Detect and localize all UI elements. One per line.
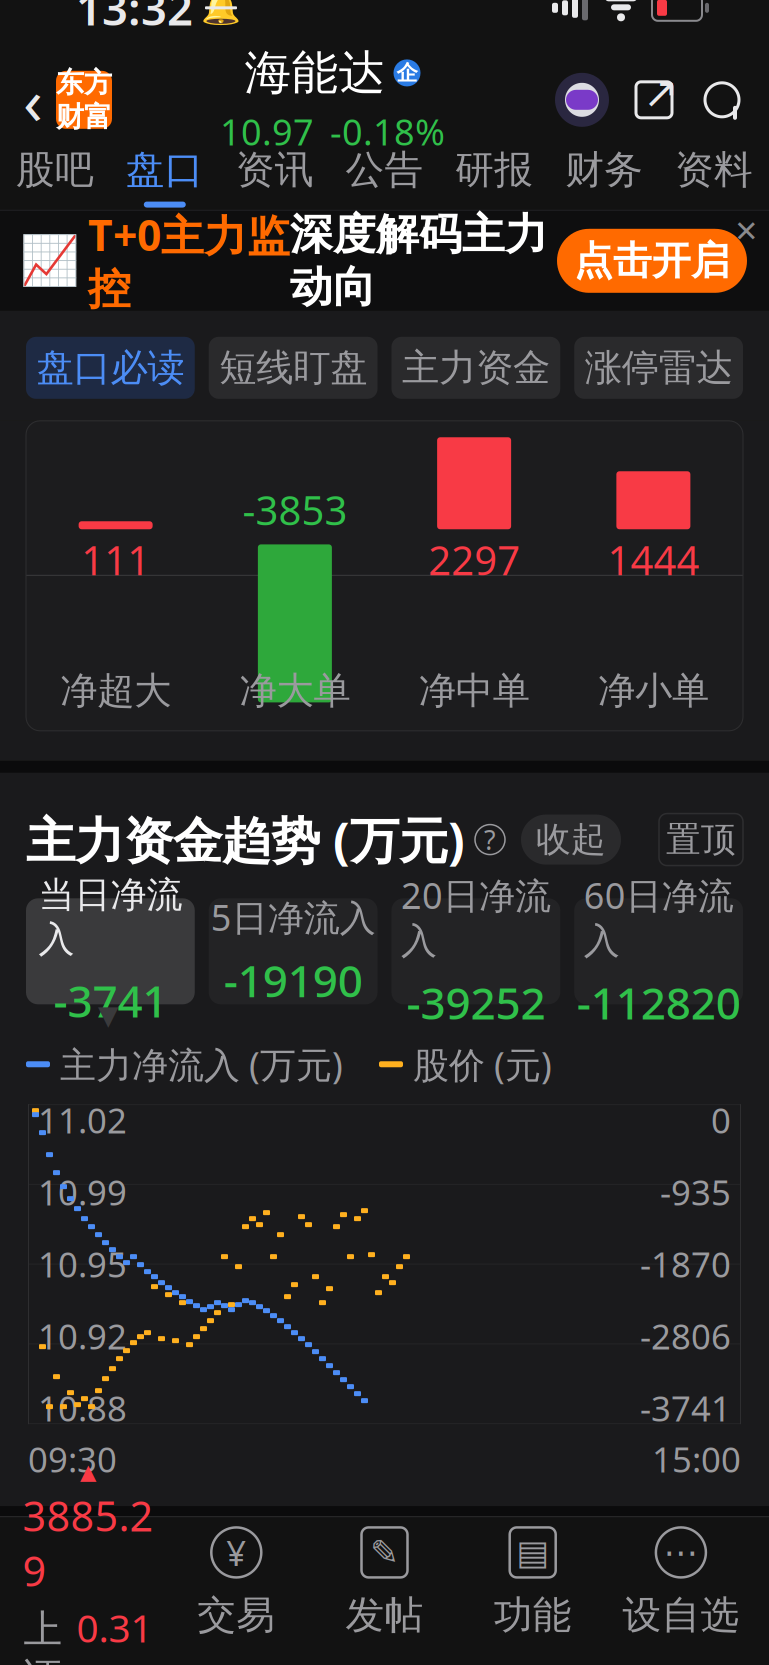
staticText: 15:00 — [652, 1436, 741, 1482]
staticText: 资料 — [675, 146, 753, 194]
button[interactable]: 返回 — [10, 67, 56, 133]
staticText: ‹ — [23, 57, 43, 142]
button[interactable]: 主力资金 — [391, 337, 560, 399]
staticText: 20日净流入 — [401, 871, 551, 963]
staticText: 10.99 — [38, 1169, 127, 1215]
button[interactable]: 资讯 — [220, 144, 330, 210]
staticText: 0 — [711, 1097, 731, 1143]
button[interactable]: 5日净流入 — [209, 898, 378, 1004]
staticText: 3885.29 — [23, 1488, 154, 1598]
button[interactable]: AI 助手 — [553, 71, 611, 129]
staticText: 交易 — [197, 1591, 275, 1639]
staticText: ¥ — [226, 1529, 246, 1575]
staticText: 涨停雷达 — [585, 345, 733, 391]
staticText: 净超大 — [60, 668, 171, 714]
button[interactable]: ⋯ — [607, 1525, 755, 1639]
staticText: 10.95 — [38, 1241, 127, 1287]
staticText: 净中单 — [419, 668, 530, 714]
staticText: -3741 — [53, 971, 167, 1030]
staticText: 上证 — [24, 1606, 63, 1665]
button[interactable]: 📈 — [0, 211, 769, 311]
button[interactable]: 公告 — [330, 144, 439, 210]
button[interactable]: 分享 — [623, 69, 685, 131]
button[interactable]: 20日净流入 — [391, 898, 560, 1004]
staticText: 主力净流入 (万元) — [60, 1040, 343, 1088]
button[interactable]: 说明 — [475, 825, 505, 855]
staticText: 财富 — [56, 100, 112, 134]
staticText: 财务 — [565, 146, 643, 194]
staticText: 置顶 — [666, 818, 736, 861]
staticText: -1870 — [640, 1241, 731, 1287]
staticText: 股价 (元) — [413, 1040, 552, 1088]
staticText: 盘口必读 — [36, 345, 184, 391]
staticText: 主力资金趋势 (万元) — [26, 807, 465, 872]
staticText: 设自选 — [622, 1591, 739, 1639]
button[interactable]: 收起 — [521, 815, 621, 865]
staticText: 111 — [81, 533, 150, 586]
staticText: 09:30 — [28, 1436, 117, 1482]
staticText: ⋯ — [663, 1533, 698, 1572]
staticText: 点击开启 — [574, 237, 730, 285]
staticText: -3853 — [242, 483, 347, 536]
staticText: 10.97 — [220, 108, 314, 155]
staticText: 海能达 — [244, 44, 385, 102]
button[interactable]: 置顶 — [659, 814, 743, 866]
staticText: 资讯 — [236, 146, 314, 194]
staticText: 主力资金 — [402, 345, 550, 391]
staticText: ✕ — [734, 215, 759, 248]
button[interactable]: 股吧 — [0, 144, 110, 210]
staticText: 深度解码主力动向 — [290, 208, 548, 313]
button[interactable]: 东方财富 — [56, 71, 112, 129]
staticText: ▲ — [80, 1460, 96, 1484]
staticText: T+0主力监控 — [88, 206, 290, 315]
staticText: -39252 — [406, 973, 545, 1031]
staticText: 公告 — [345, 146, 423, 194]
button[interactable]: 盘口必读 — [26, 337, 195, 399]
staticText: -112820 — [577, 973, 741, 1031]
staticText: 🔔 — [201, 0, 241, 26]
staticText: 股吧 — [16, 146, 94, 194]
staticText: 东方 — [56, 65, 112, 100]
staticText: 盘口 — [126, 146, 204, 194]
button[interactable]: 当日净流入 — [26, 898, 195, 1004]
button[interactable]: 盘口 — [110, 144, 220, 210]
staticText: 研报 — [455, 146, 533, 194]
staticText: ? — [484, 822, 496, 857]
staticText: 10.88 — [38, 1385, 127, 1431]
button[interactable]: 研报 — [439, 144, 549, 210]
staticText: 当日净流入 — [38, 873, 182, 961]
button[interactable]: 财务 — [549, 144, 659, 210]
staticText: 收起 — [536, 818, 606, 861]
staticText: 1444 — [607, 533, 699, 586]
button[interactable]: ¥ — [162, 1525, 310, 1639]
staticText: ✎ — [370, 1533, 399, 1572]
staticText: 11.02 — [38, 1097, 127, 1143]
staticText: ▼ — [98, 1000, 119, 1030]
staticText: 13:32 — [76, 0, 193, 38]
staticText: 10.92 — [38, 1313, 127, 1359]
staticText: 发帖 — [345, 1591, 423, 1639]
staticText: 2297 — [428, 533, 520, 586]
staticText: 0.31% — [77, 1602, 153, 1665]
staticText: 企 — [396, 60, 417, 86]
staticText: 📈 — [20, 233, 80, 288]
button[interactable]: ▤ — [459, 1525, 607, 1639]
button[interactable]: 短线盯盘 — [209, 337, 378, 399]
button[interactable]: ✎ — [310, 1525, 459, 1639]
staticText: 短线盯盘 — [219, 345, 367, 391]
staticText: -935 — [660, 1169, 731, 1215]
staticText: ↗ — [643, 69, 679, 117]
button[interactable]: 资料 — [659, 144, 769, 210]
button[interactable]: 60日净流入 — [574, 898, 743, 1004]
staticText: 功能 — [494, 1591, 572, 1639]
staticText: -19190 — [224, 951, 363, 1009]
staticText: 净大单 — [239, 668, 350, 714]
staticText: 60日净流入 — [584, 871, 734, 963]
staticText: 净小单 — [598, 668, 709, 714]
button[interactable]: 涨停雷达 — [574, 337, 743, 399]
staticText: -2806 — [640, 1313, 731, 1359]
staticText: -3741 — [640, 1385, 731, 1431]
button[interactable]: ▲ — [14, 1460, 162, 1665]
staticText: ▤ — [516, 1533, 549, 1572]
button[interactable]: 搜索 — [693, 71, 751, 129]
